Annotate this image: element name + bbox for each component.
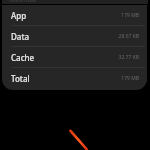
button[interactable]: Total [2,68,147,88]
staticText: 179 MB [121,75,139,82]
staticText: 32.77 KB [118,54,139,61]
staticText: Total [11,73,30,84]
button[interactable]: Data [2,26,147,46]
staticText: 28.67 KB [118,33,139,40]
staticText: Cache [11,52,35,63]
staticText: Data [11,31,30,42]
staticText: Space used [9,0,36,2]
staticText: App [11,10,27,21]
button[interactable]: App [2,5,147,25]
staticText: 179 MB [121,12,139,19]
button[interactable]: Cache [2,47,147,67]
